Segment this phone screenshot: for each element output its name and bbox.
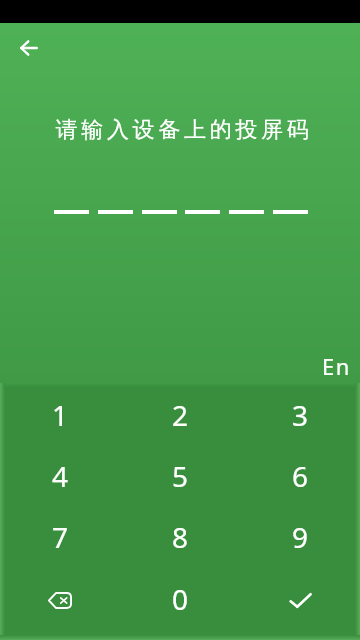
- button[interactable]: Back: [7, 26, 51, 70]
- button[interactable]: 0: [120, 568, 240, 630]
- staticText: 5: [172, 457, 189, 495]
- staticText: 6: [292, 457, 309, 495]
- staticText: 1: [52, 396, 69, 434]
- button[interactable]: 3: [240, 384, 360, 445]
- staticText: 4: [52, 457, 69, 495]
- staticText: 0: [172, 580, 189, 618]
- staticText: 8: [172, 518, 189, 556]
- button[interactable]: 7: [0, 506, 120, 568]
- button[interactable]: 2: [120, 384, 240, 445]
- button[interactable]: 1: [0, 384, 120, 445]
- staticText: 3: [292, 396, 309, 434]
- button[interactable]: Delete: [0, 568, 120, 630]
- button[interactable]: En: [322, 351, 360, 383]
- staticText: 9: [292, 518, 309, 556]
- button[interactable]: 6: [240, 445, 360, 506]
- button[interactable]: Confirm: [240, 568, 360, 630]
- staticText: 7: [52, 518, 69, 556]
- button[interactable]: 4: [0, 445, 120, 506]
- staticText: 请输入设备上的投屏码: [8, 116, 360, 144]
- button[interactable]: 8: [120, 506, 240, 568]
- staticText: 2: [172, 396, 189, 434]
- button[interactable]: 5: [120, 445, 240, 506]
- button[interactable]: 9: [240, 506, 360, 568]
